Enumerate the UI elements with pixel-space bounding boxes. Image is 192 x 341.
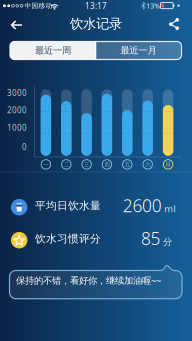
staticText: 平均日饮水量 xyxy=(35,199,101,212)
staticText: 六 xyxy=(145,161,150,168)
staticText: 0 xyxy=(22,142,27,152)
staticText: 13:17 xyxy=(85,0,107,11)
staticText: 二 xyxy=(64,161,69,168)
staticText: 日 xyxy=(166,161,171,168)
staticText: 2000 xyxy=(7,105,27,115)
staticText: 五 xyxy=(125,161,130,168)
staticText: 2600 xyxy=(123,194,162,217)
button[interactable]: Share xyxy=(164,13,184,35)
staticText: 13% xyxy=(146,1,160,10)
staticText: 一 xyxy=(43,161,48,168)
staticText: 85 xyxy=(141,227,161,250)
staticText: 中国移动 xyxy=(24,2,52,10)
button[interactable]: 最近一月 xyxy=(96,41,181,59)
staticText: ml xyxy=(164,202,175,215)
staticText: 最近一周 xyxy=(35,45,71,56)
staticText: 1000 xyxy=(7,122,27,133)
staticText: 三 xyxy=(84,161,89,168)
button[interactable]: 最近一周 xyxy=(10,41,95,59)
staticText: 最近一月 xyxy=(121,45,157,56)
staticText: 3000 xyxy=(7,88,27,98)
staticText: 保持的不错，看好你，继续加油喔~~ xyxy=(16,274,161,286)
button[interactable]: Back xyxy=(5,14,28,36)
staticText: 饮水记录 xyxy=(70,16,122,32)
staticText: 四 xyxy=(104,161,109,168)
staticText: 饮水习惯评分 xyxy=(35,232,101,245)
staticText: 分 xyxy=(163,236,172,248)
